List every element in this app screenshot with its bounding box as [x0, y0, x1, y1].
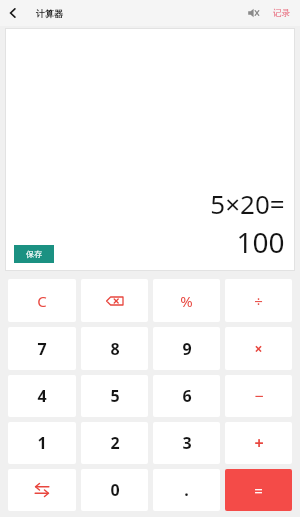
- button[interactable]: 9: [153, 327, 220, 370]
- staticText: 8: [110, 338, 120, 360]
- staticText: 2: [110, 432, 120, 454]
- staticText: 100: [236, 223, 285, 261]
- button[interactable]: 保存: [14, 245, 54, 263]
- staticText: −: [254, 385, 264, 407]
- staticText: 7: [37, 338, 47, 360]
- staticText: =: [254, 480, 263, 500]
- button[interactable]: 6: [153, 375, 220, 417]
- button[interactable]: +: [225, 422, 292, 464]
- staticText: 记录: [273, 8, 290, 19]
- staticText: 0: [110, 479, 120, 501]
- staticText: 5: [110, 385, 120, 407]
- button[interactable]: Backspace: [81, 279, 148, 322]
- staticText: %: [180, 291, 193, 311]
- staticText: 9: [182, 338, 192, 360]
- staticText: .: [184, 479, 189, 501]
- button[interactable]: =: [225, 469, 292, 511]
- button[interactable]: ×: [225, 327, 292, 370]
- button[interactable]: C: [8, 279, 76, 322]
- button[interactable]: 4: [8, 375, 76, 417]
- button[interactable]: 0: [81, 469, 148, 511]
- staticText: 计算器: [36, 8, 63, 19]
- button[interactable]: Swap: [8, 469, 76, 511]
- button[interactable]: Back: [0, 0, 26, 26]
- button[interactable]: −: [225, 375, 292, 417]
- staticText: 3: [182, 432, 192, 454]
- button[interactable]: 3: [153, 422, 220, 464]
- staticText: ×: [254, 339, 263, 358]
- button[interactable]: 7: [8, 327, 76, 370]
- button[interactable]: 5: [81, 375, 148, 417]
- staticText: 4: [37, 385, 47, 407]
- staticText: 6: [182, 385, 192, 407]
- button[interactable]: 8: [81, 327, 148, 370]
- staticText: 保存: [26, 249, 42, 259]
- staticText: 1: [37, 432, 47, 454]
- button[interactable]: 2: [81, 422, 148, 464]
- staticText: 5×20=: [210, 186, 285, 221]
- button[interactable]: .: [153, 469, 220, 511]
- staticText: ÷: [254, 291, 263, 311]
- button[interactable]: ÷: [225, 279, 292, 322]
- staticText: +: [254, 432, 264, 454]
- button[interactable]: Mute: [241, 1, 265, 25]
- button[interactable]: 1: [8, 422, 76, 464]
- staticText: C: [37, 291, 47, 311]
- button[interactable]: %: [153, 279, 220, 322]
- button[interactable]: 记录: [269, 4, 294, 23]
